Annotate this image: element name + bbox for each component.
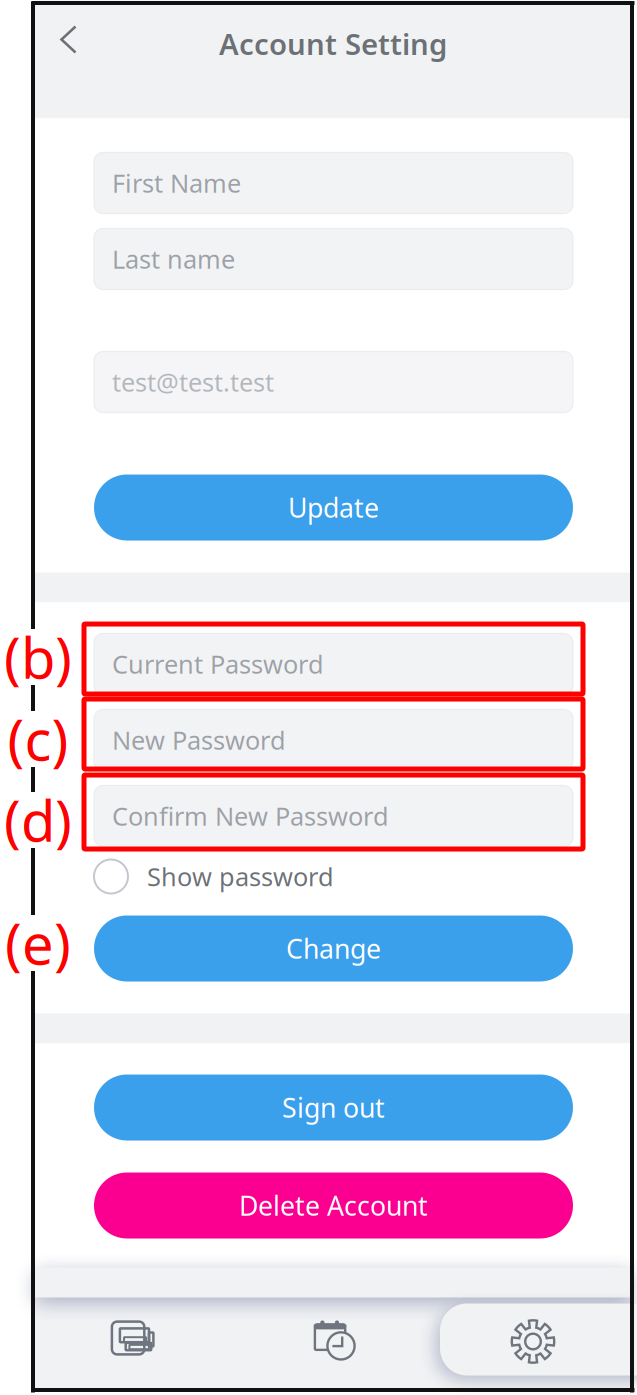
- staticText: Sign out: [282, 1090, 385, 1125]
- button[interactable]: Show password: [94, 857, 573, 895]
- staticText: Last name: [112, 242, 235, 276]
- staticText: Delete Account: [239, 1188, 428, 1223]
- button[interactable]: Delete Account: [94, 1172, 573, 1238]
- staticText: Change: [286, 931, 381, 966]
- staticText: test@test.test: [112, 365, 274, 399]
- button[interactable]: Change: [94, 915, 573, 981]
- staticText: Update: [288, 490, 379, 525]
- staticText: (d): [4, 783, 72, 857]
- staticText: (b): [4, 620, 72, 694]
- staticText: Current Password: [112, 647, 324, 681]
- staticText: (e): [5, 906, 71, 980]
- button[interactable]: Print: [32, 1277, 231, 1395]
- staticText: (c): [7, 702, 68, 776]
- staticText: New Password: [112, 723, 286, 757]
- button[interactable]: Settings: [433, 1280, 632, 1395]
- button[interactable]: Back: [33, 10, 105, 70]
- staticText: Show password: [147, 860, 334, 893]
- button[interactable]: Update: [94, 474, 573, 540]
- staticText: First Name: [112, 166, 241, 200]
- button[interactable]: Sign out: [94, 1074, 573, 1140]
- staticText: Account Setting: [219, 24, 447, 63]
- staticText: Confirm New Password: [112, 799, 389, 833]
- button[interactable]: Schedule: [233, 1280, 432, 1395]
